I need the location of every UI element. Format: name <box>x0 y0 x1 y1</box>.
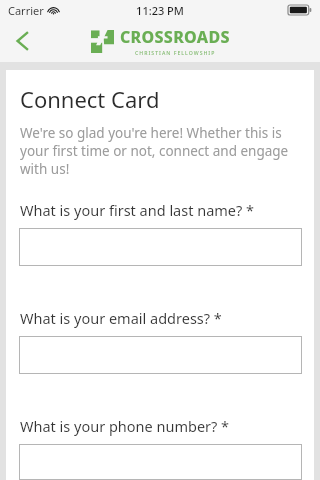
staticText: What is your phone number? * <box>20 416 230 436</box>
staticText: We're so glad you're here! Whether this … <box>20 124 298 178</box>
button[interactable] <box>19 444 302 480</box>
staticText: CROSSROADS <box>120 26 230 48</box>
staticText: Connect Card <box>20 84 160 114</box>
button[interactable] <box>19 228 302 266</box>
staticText: Carrier <box>8 3 44 18</box>
button[interactable]: Back <box>0 20 44 62</box>
staticText: 11:23 PM <box>136 3 184 18</box>
staticText: What is your first and last name? * <box>20 200 255 220</box>
button[interactable] <box>19 336 302 374</box>
staticText: CHRISTIAN FELLOWSHIP <box>135 49 216 56</box>
staticText: What is your email address? * <box>20 308 222 328</box>
